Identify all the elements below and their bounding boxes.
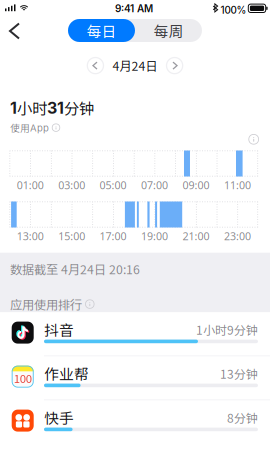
staticText: 09:00: [182, 178, 209, 192]
button[interactable]: 100: [0, 356, 270, 400]
button[interactable]: Next day: [164, 55, 185, 76]
button[interactable]: About app usage: [249, 134, 259, 144]
staticText: 19:00: [141, 229, 168, 243]
staticText: 4月24日: [112, 57, 157, 74]
staticText: 01:00: [17, 178, 44, 192]
staticText: 07:00: [141, 178, 168, 192]
staticText: 1小时31分钟: [10, 97, 94, 119]
staticText: 13分钟: [220, 365, 258, 382]
staticText: 抖音: [44, 319, 74, 340]
button[interactable]: 每日: [68, 19, 135, 42]
staticText: 8分钟: [227, 409, 258, 426]
staticText: 13:00: [17, 229, 44, 243]
staticText: 23:00: [224, 229, 251, 243]
staticText: 9:41 AM: [115, 2, 153, 15]
button[interactable]: 抖音: [0, 312, 270, 356]
staticText: 应用使用排行: [10, 295, 82, 313]
button[interactable]: Previous day: [85, 55, 106, 76]
staticText: 05:00: [100, 178, 127, 192]
staticText: 100: [14, 370, 32, 386]
staticText: 每日: [86, 20, 116, 41]
staticText: 11:00: [224, 178, 251, 192]
staticText: 17:00: [100, 229, 127, 243]
button[interactable]: 每周: [135, 19, 202, 42]
button[interactable]: 快手: [0, 400, 270, 444]
staticText: 使用App: [10, 121, 49, 134]
staticText: 数据截至 4月24日 20:16: [10, 260, 140, 278]
staticText: 1小时9分钟: [196, 321, 258, 338]
staticText: 快手: [44, 407, 74, 428]
staticText: 每周: [153, 20, 183, 41]
button[interactable]: Back: [0, 17, 29, 45]
staticText: 03:00: [58, 178, 85, 192]
staticText: 100%: [220, 4, 246, 16]
staticText: 21:00: [182, 229, 209, 243]
staticText: 作业帮: [44, 363, 89, 384]
staticText: 15:00: [58, 229, 85, 243]
